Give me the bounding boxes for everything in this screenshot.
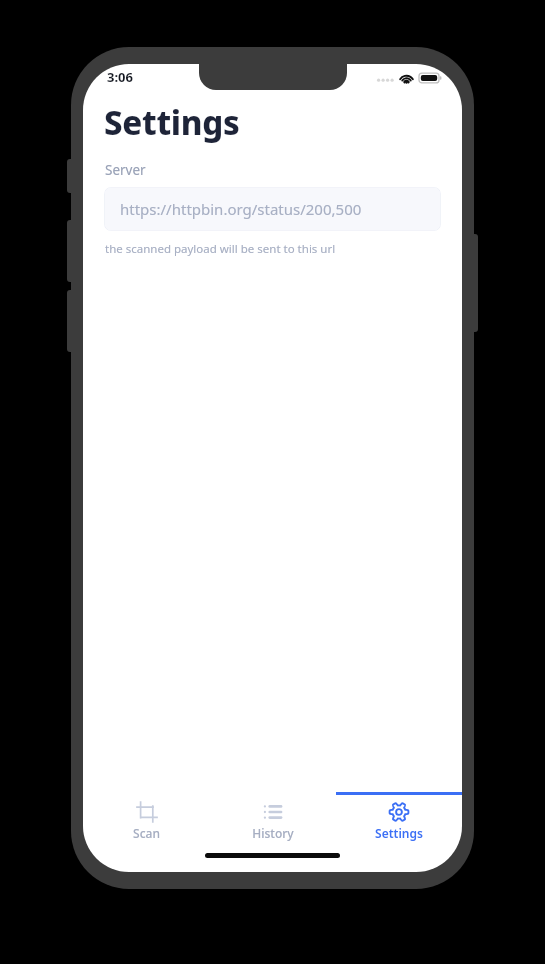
staticText: Settings	[375, 825, 423, 841]
button[interactable]: https://httpbin.org/status/200,500	[104, 187, 441, 231]
other: History	[263, 802, 283, 822]
button[interactable]: Scan	[83, 792, 210, 852]
other: Scan	[137, 802, 157, 822]
button[interactable]: History	[210, 792, 336, 852]
button[interactable]: Settings	[336, 792, 462, 852]
staticText: the scanned payload will be sent to this…	[105, 241, 336, 257]
staticText: Scan	[133, 825, 160, 841]
staticText: 3:06	[107, 68, 133, 86]
staticText: https://httpbin.org/status/200,500	[120, 199, 362, 219]
staticText: History	[252, 825, 294, 841]
staticText: Settings	[104, 100, 240, 145]
other: Settings	[389, 802, 409, 822]
staticText: Server	[105, 161, 146, 179]
